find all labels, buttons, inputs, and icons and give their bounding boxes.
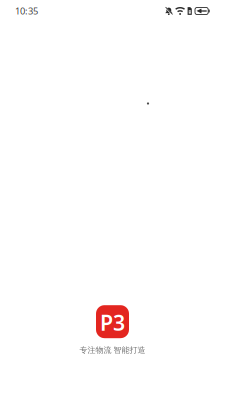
staticText: P3 (100, 308, 125, 337)
staticText: 10:35 (15, 5, 38, 17)
staticText: 专注物流 智能打造 (79, 345, 145, 355)
